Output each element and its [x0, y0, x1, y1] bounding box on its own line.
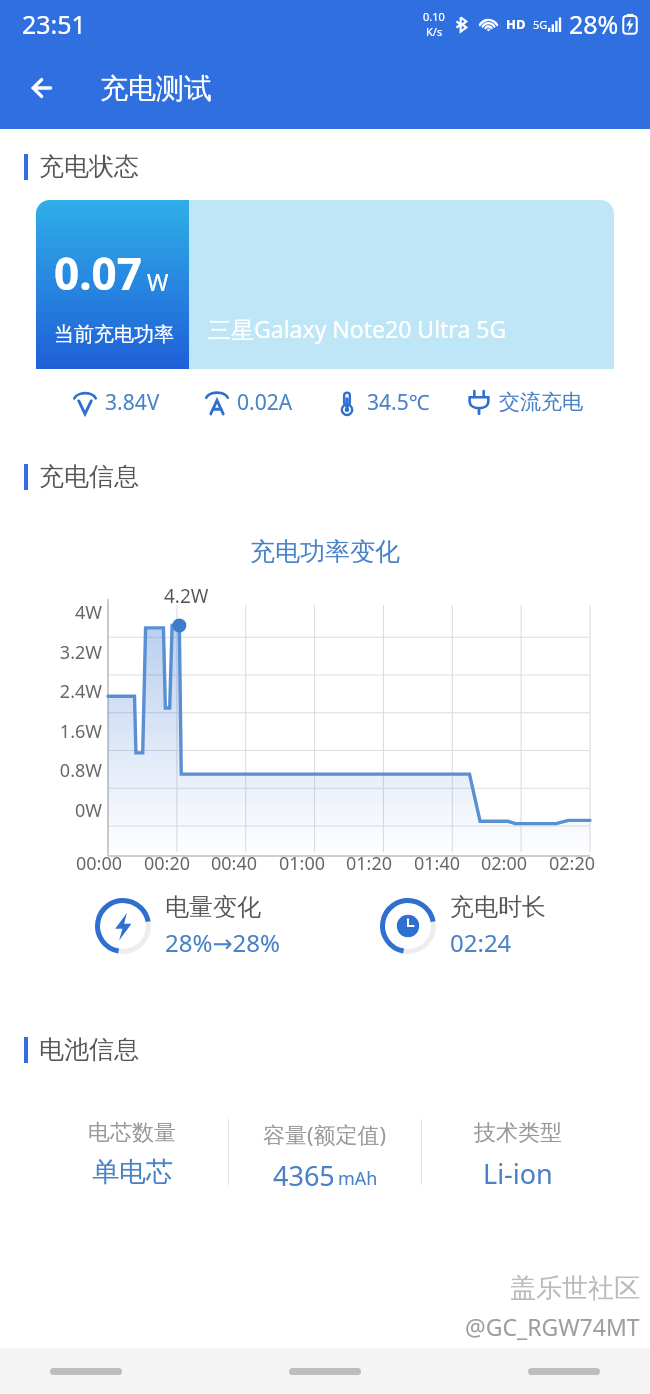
button[interactable]: 容量(额定值) — [229, 1119, 421, 1194]
button[interactable]: 充电时长 — [325, 892, 600, 959]
staticText: 4365 — [273, 1157, 335, 1194]
staticText: 2.4W — [46, 679, 102, 704]
staticText: 00:20 — [144, 851, 191, 876]
staticText: 三星Galaxy Note20 Ultra 5G — [208, 313, 507, 344]
button[interactable]: 3.84V — [50, 388, 182, 417]
staticText: 4.2W — [164, 583, 209, 609]
button[interactable]: 0.07 — [36, 200, 614, 435]
staticText: 0.10 — [423, 9, 445, 24]
staticText: 01:00 — [279, 851, 326, 876]
button[interactable]: 0.02A — [182, 388, 315, 417]
staticText: 00:00 — [76, 851, 123, 876]
button[interactable]: 充电功率变化 — [36, 510, 614, 1010]
staticText: 电芯数量 — [88, 1119, 176, 1147]
staticText: Li-ion — [483, 1155, 553, 1192]
staticText: 02:00 — [481, 851, 528, 876]
staticText: 28% — [569, 7, 619, 41]
staticText: 00:40 — [211, 851, 258, 876]
staticText: 充电状态 — [39, 151, 139, 182]
button[interactable]: Back — [18, 62, 70, 114]
button[interactable]: Navigation button — [528, 1360, 600, 1382]
staticText: 5G — [533, 17, 548, 32]
staticText: 34.5℃ — [367, 388, 430, 417]
staticText: mAh — [338, 1166, 378, 1191]
button[interactable]: Navigation button — [50, 1360, 122, 1382]
staticText: HD — [506, 15, 526, 33]
staticText: 1.6W — [46, 719, 102, 744]
staticText: 交流充电 — [499, 389, 583, 415]
staticText: 单电芯 — [92, 1155, 173, 1189]
staticText: 0.8W — [46, 758, 102, 783]
staticText: 28%→28% — [165, 926, 280, 959]
button[interactable]: 电量变化 — [50, 892, 325, 959]
button[interactable]: 技术类型 — [422, 1119, 614, 1192]
button[interactable]: Navigation button — [289, 1360, 361, 1382]
staticText: 充电时长 — [450, 892, 546, 922]
staticText: 充电信息 — [39, 461, 139, 492]
staticText: 电池信息 — [39, 1034, 139, 1065]
staticText: 01:20 — [346, 851, 393, 876]
staticText: 02:24 — [450, 926, 512, 959]
staticText: 当前充电功率 — [54, 322, 174, 347]
button[interactable]: 交流充电 — [448, 389, 600, 415]
staticText: 容量(额定值) — [263, 1119, 387, 1149]
button[interactable]: 电芯数量 — [36, 1119, 228, 1189]
staticText: @GC_RGW74MT — [465, 1311, 640, 1342]
staticText: 4W — [46, 600, 102, 625]
staticText: 02:20 — [549, 851, 596, 876]
staticText: 0W — [46, 798, 102, 823]
staticText: 01:40 — [414, 851, 461, 876]
staticText: 盖乐世社区 — [510, 1272, 640, 1305]
staticText: 0.02A — [237, 388, 293, 417]
staticText: 电量变化 — [165, 892, 261, 922]
staticText: 3.2W — [46, 640, 102, 665]
staticText: K/s — [426, 24, 443, 39]
button[interactable]: 电芯数量 — [36, 1083, 614, 1228]
staticText: W — [147, 266, 169, 297]
staticText: 技术类型 — [474, 1119, 562, 1147]
button[interactable]: 34.5℃ — [315, 388, 448, 417]
staticText: 充电功率变化 — [36, 536, 614, 567]
staticText: 充电测试 — [100, 71, 212, 106]
staticText: 3.84V — [105, 388, 160, 417]
staticText: 0.07 — [54, 243, 142, 303]
staticText: 23:51 — [22, 7, 86, 41]
